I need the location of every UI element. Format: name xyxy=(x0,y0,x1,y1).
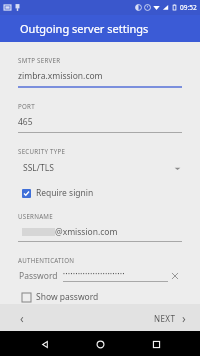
button[interactable]: Previous xyxy=(12,308,32,328)
button[interactable]: Home xyxy=(89,333,111,355)
staticText: PORT xyxy=(18,102,35,110)
staticText: AUTHENTICATION xyxy=(18,256,75,264)
staticText: 09:52 xyxy=(180,3,197,12)
button[interactable]: SSL/TLS xyxy=(18,162,182,174)
button[interactable]: Show password xyxy=(18,291,99,303)
staticText: SSL/TLS xyxy=(23,162,174,174)
staticText: 465 xyxy=(18,116,33,128)
staticText: USERNAME xyxy=(18,212,53,220)
staticText: ••••••••••••••••••••••••• xyxy=(63,271,126,278)
staticText: Show password xyxy=(36,291,99,303)
button[interactable]: @xmission.com xyxy=(18,226,182,242)
button[interactable]: Back xyxy=(34,333,56,355)
staticText: › xyxy=(182,310,186,326)
staticText: @xmission.com xyxy=(55,226,118,238)
staticText: Outgoing server settings xyxy=(20,21,149,36)
staticText: Require signin xyxy=(36,187,94,199)
staticText: ‹ xyxy=(20,310,24,326)
button[interactable]: zimbra.xmission.com xyxy=(18,70,182,88)
button[interactable]: Recents xyxy=(145,333,167,355)
button[interactable]: Clear password xyxy=(168,269,182,283)
staticText: NEXT xyxy=(154,313,176,324)
button[interactable]: Require signin xyxy=(18,187,94,199)
button[interactable]: NEXT xyxy=(154,310,186,326)
button[interactable]: 465 xyxy=(18,116,182,133)
button[interactable]: ••••••••••••••••••••••••• xyxy=(63,271,168,282)
staticText: Password xyxy=(19,270,58,282)
staticText: zimbra.xmission.com xyxy=(18,70,103,82)
staticText: SECURITY TYPE xyxy=(18,147,66,155)
staticText: SMTP SERVER xyxy=(18,56,61,64)
